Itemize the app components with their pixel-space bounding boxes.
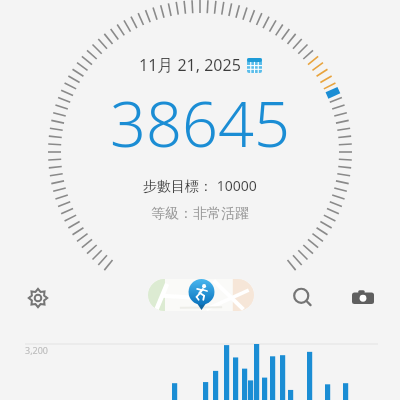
- button[interactable]: Camera: [343, 278, 383, 318]
- staticText: 11月 21, 2025: [139, 54, 241, 76]
- button[interactable]: Settings: [18, 278, 58, 318]
- staticText: 3,200: [25, 344, 49, 356]
- staticText: 等級：非常活躍: [151, 205, 249, 223]
- button[interactable]: Activity map: [148, 279, 254, 311]
- staticText: 38645: [110, 80, 290, 166]
- staticText: 步數目標： 10000: [143, 176, 257, 195]
- button[interactable]: Search: [283, 278, 323, 318]
